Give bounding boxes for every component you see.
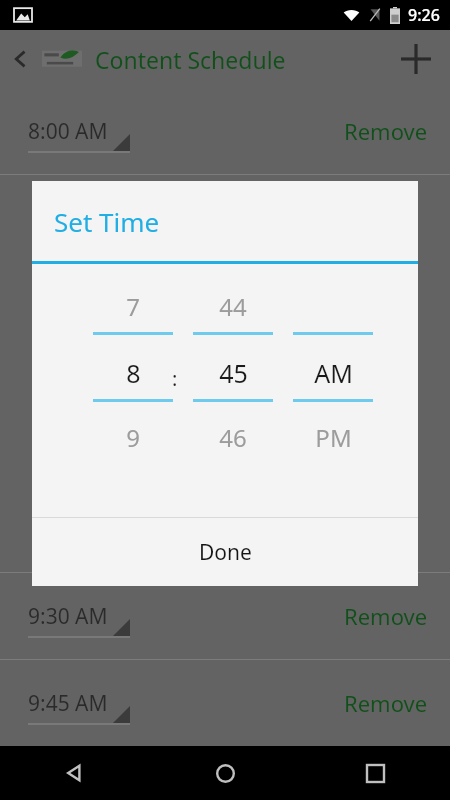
- button[interactable]: Back: [4, 42, 38, 76]
- button[interactable]: 9: [93, 421, 173, 454]
- button[interactable]: Remove: [344, 601, 428, 631]
- button[interactable]: Add: [390, 33, 442, 85]
- button[interactable]: 44: [193, 290, 273, 323]
- staticText: Remove: [344, 601, 428, 631]
- staticText: 8: [126, 356, 141, 390]
- button[interactable]: AM: [293, 356, 373, 390]
- button[interactable]: Recents: [300, 746, 450, 800]
- staticText: Remove: [344, 688, 428, 718]
- button[interactable]: Remove: [344, 116, 428, 146]
- staticText: 45: [219, 356, 248, 390]
- staticText: Set Time: [54, 204, 160, 239]
- button[interactable]: Home: [150, 746, 300, 800]
- button[interactable]: 46: [193, 421, 273, 454]
- staticText: Done: [199, 538, 252, 567]
- staticText: 9:30 AM: [28, 602, 108, 631]
- staticText: 9:45 AM: [28, 689, 108, 718]
- staticText: AM: [314, 356, 353, 390]
- button[interactable]: 7: [93, 290, 173, 323]
- staticText: PM: [315, 421, 352, 454]
- button[interactable]: 8: [93, 356, 173, 390]
- staticText: 9:26: [408, 4, 440, 26]
- button[interactable]: Remove: [344, 688, 428, 718]
- button[interactable]: 9:45 AM: [0, 660, 450, 746]
- button[interactable]: 45: [193, 356, 273, 390]
- button[interactable]: 8:00 AM: [0, 88, 450, 174]
- staticText: 46: [219, 421, 247, 454]
- button[interactable]: Done: [32, 518, 418, 586]
- staticText: Content Schedule: [95, 44, 286, 75]
- staticText: 44: [219, 290, 247, 323]
- button[interactable]: Back: [0, 746, 150, 800]
- staticText: 8:00 AM: [28, 117, 108, 146]
- staticText: :: [172, 365, 178, 392]
- button[interactable]: PM: [293, 421, 373, 454]
- button[interactable]: 9:30 AM: [0, 573, 450, 659]
- staticText: Remove: [344, 116, 428, 146]
- staticText: 7: [126, 290, 140, 323]
- staticText: 9: [126, 421, 140, 454]
